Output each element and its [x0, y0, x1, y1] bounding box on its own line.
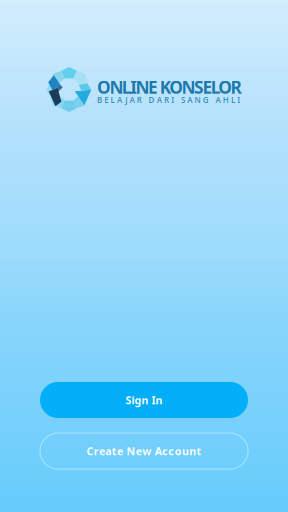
staticText: BELAJAR DARI SANG AHLI: [97, 95, 240, 105]
button[interactable]: Sign In: [40, 382, 248, 418]
staticText: Sign In: [125, 393, 162, 407]
staticText: ONLINE KONSELOR: [97, 75, 242, 98]
button[interactable]: Create New Account: [40, 433, 248, 469]
staticText: Create New Account: [86, 444, 202, 458]
